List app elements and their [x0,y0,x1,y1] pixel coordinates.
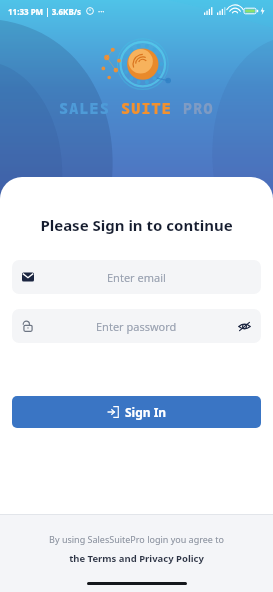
button[interactable]: Enter password [12,309,261,343]
staticText: 11:33 PM | 3.6KB/s [8,6,82,17]
staticText: PRO [183,98,214,118]
staticText: By using SalesSuitePro login you agree t… [0,533,273,545]
staticText: Enter password [96,319,177,334]
staticText: SUITE [121,98,183,118]
staticText: Please Sign in to continue [0,215,273,235]
button[interactable]: Enter email [12,260,261,294]
staticText: SALES [59,98,121,118]
button[interactable]: Show password [233,315,255,337]
staticText: Sign In [125,404,167,420]
button[interactable]: the Terms and Privacy Policy [0,552,273,565]
staticText: Enter email [107,270,166,285]
button[interactable]: Sign In [12,396,261,428]
staticText: the Terms and Privacy Policy [69,552,204,565]
staticText: ··· [98,6,105,17]
